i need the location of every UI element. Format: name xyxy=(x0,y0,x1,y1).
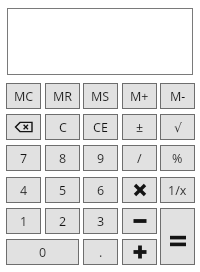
staticText: CE xyxy=(93,119,108,136)
staticText: . xyxy=(99,244,103,261)
staticText: 3 xyxy=(97,213,105,230)
staticText: 1 xyxy=(20,213,28,230)
staticText: / xyxy=(137,150,142,167)
staticText: 6 xyxy=(97,182,105,199)
button[interactable]: M- xyxy=(160,83,195,109)
button[interactable] xyxy=(122,208,157,234)
button[interactable]: 6 xyxy=(83,177,118,203)
staticText: 5 xyxy=(59,182,67,199)
staticText: % xyxy=(172,150,183,167)
staticText: 9 xyxy=(97,150,105,167)
staticText: ± xyxy=(136,119,144,136)
button[interactable]: 9 xyxy=(83,145,118,171)
button[interactable] xyxy=(122,177,157,203)
button[interactable]: 4 xyxy=(6,177,41,203)
button[interactable]: / xyxy=(122,145,157,171)
button[interactable]: % xyxy=(160,145,195,171)
button[interactable]: M+ xyxy=(122,83,157,109)
button[interactable]: 2 xyxy=(45,208,80,234)
button[interactable]: 0 xyxy=(6,239,79,265)
button[interactable]: √ xyxy=(160,114,195,140)
button[interactable]: 3 xyxy=(83,208,118,234)
button[interactable]: MC xyxy=(6,83,41,109)
staticText: 7 xyxy=(20,150,28,167)
button[interactable]: 1 xyxy=(6,208,41,234)
staticText: MR xyxy=(53,88,73,105)
button[interactable]: MS xyxy=(83,83,118,109)
staticText: 0 xyxy=(39,244,47,261)
button[interactable]: . xyxy=(83,239,118,265)
staticText: C xyxy=(59,119,67,136)
button[interactable]: 5 xyxy=(45,177,80,203)
button[interactable]: 7 xyxy=(6,145,41,171)
staticText: 2 xyxy=(59,213,67,230)
button[interactable]: CE xyxy=(83,114,118,140)
staticText: M- xyxy=(170,88,186,105)
staticText: √ xyxy=(174,120,182,135)
button[interactable]: MR xyxy=(45,83,80,109)
staticText: MS xyxy=(91,88,110,105)
button[interactable]: 8 xyxy=(45,145,80,171)
button[interactable] xyxy=(6,114,41,140)
staticText: 1/x xyxy=(168,182,187,199)
button[interactable]: C xyxy=(45,114,80,140)
button[interactable]: ± xyxy=(122,114,157,140)
staticText: M+ xyxy=(130,88,149,105)
button[interactable]: 1/x xyxy=(160,177,195,203)
staticText: 4 xyxy=(20,182,28,199)
staticText: MC xyxy=(14,88,34,105)
staticText: 8 xyxy=(59,150,67,167)
button[interactable] xyxy=(160,208,195,265)
button[interactable] xyxy=(122,239,157,265)
